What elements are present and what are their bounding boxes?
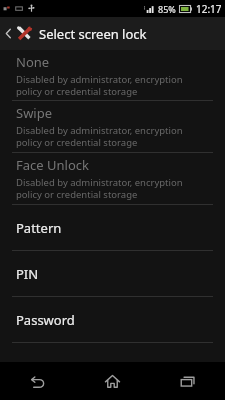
staticText: Select screen lock (39, 25, 147, 43)
button[interactable]: Back (0, 362, 75, 400)
staticText: None (16, 53, 50, 71)
staticText: Disabled by administrator, encryption po… (16, 176, 183, 201)
staticText: Swipe (16, 104, 53, 122)
staticText: Disabled by administrator, encryption po… (16, 73, 183, 98)
button[interactable]: Pattern (0, 205, 225, 250)
button[interactable]: Recent apps (150, 362, 225, 400)
staticText: Face Unlock (16, 156, 89, 174)
button[interactable]: Navigate up (0, 17, 225, 50)
button[interactable]: Swipe (0, 101, 225, 152)
staticText: Pattern (16, 219, 62, 237)
button[interactable]: PIN (0, 251, 225, 296)
button[interactable]: Face Unlock (0, 153, 225, 204)
button[interactable]: None (0, 50, 225, 100)
staticText: Disabled by administrator, encryption po… (16, 124, 183, 149)
staticText: 85% (158, 3, 176, 15)
other: Navigate up (4, 17, 13, 50)
button[interactable]: Home (75, 362, 150, 400)
button[interactable]: Password (0, 297, 225, 342)
staticText: Password (16, 311, 75, 329)
staticText: PIN (16, 265, 39, 283)
staticText: 12:17 (196, 2, 222, 16)
